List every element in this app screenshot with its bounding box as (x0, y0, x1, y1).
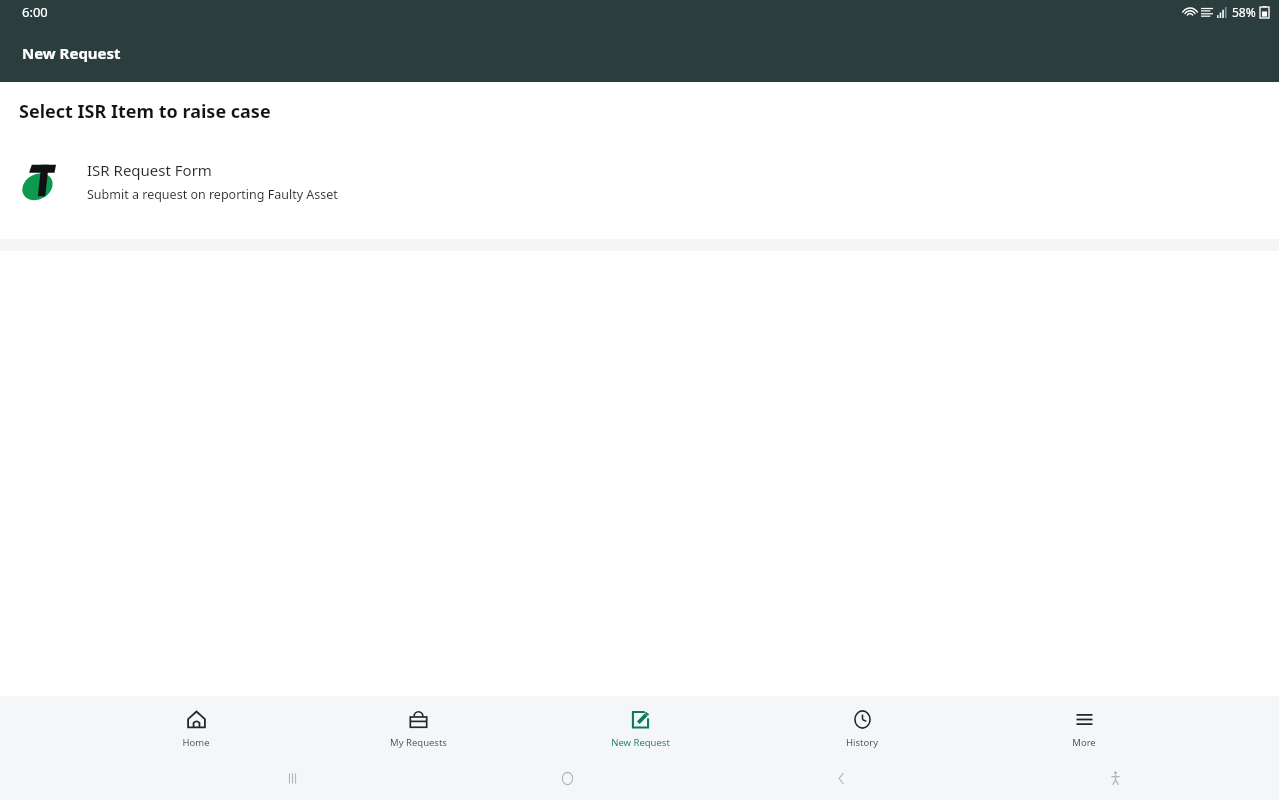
staticText: Home (182, 736, 210, 749)
button[interactable]: Accessibility (978, 756, 1252, 800)
staticText: 58% (1232, 4, 1256, 20)
button[interactable]: My Requests (307, 696, 529, 756)
staticText: My Requests (390, 736, 447, 749)
staticText: New Request (22, 43, 121, 63)
button[interactable]: More (973, 696, 1195, 756)
staticText: 6:00 (22, 3, 48, 21)
button[interactable]: New Request (529, 696, 751, 756)
button[interactable]: Recent apps (155, 756, 430, 800)
staticText: New Request (611, 736, 670, 749)
button[interactable]: Home (85, 696, 307, 756)
button[interactable]: History (751, 696, 973, 756)
staticText: History (846, 736, 878, 749)
staticText: Select ISR Item to raise case (19, 99, 271, 124)
button[interactable]: Home (430, 756, 704, 800)
button[interactable]: ISR Request Form (0, 151, 1279, 211)
staticText: Submit a request on reporting Faulty Ass… (87, 186, 338, 203)
staticText: ISR Request Form (87, 160, 212, 180)
staticText: More (1072, 736, 1096, 749)
